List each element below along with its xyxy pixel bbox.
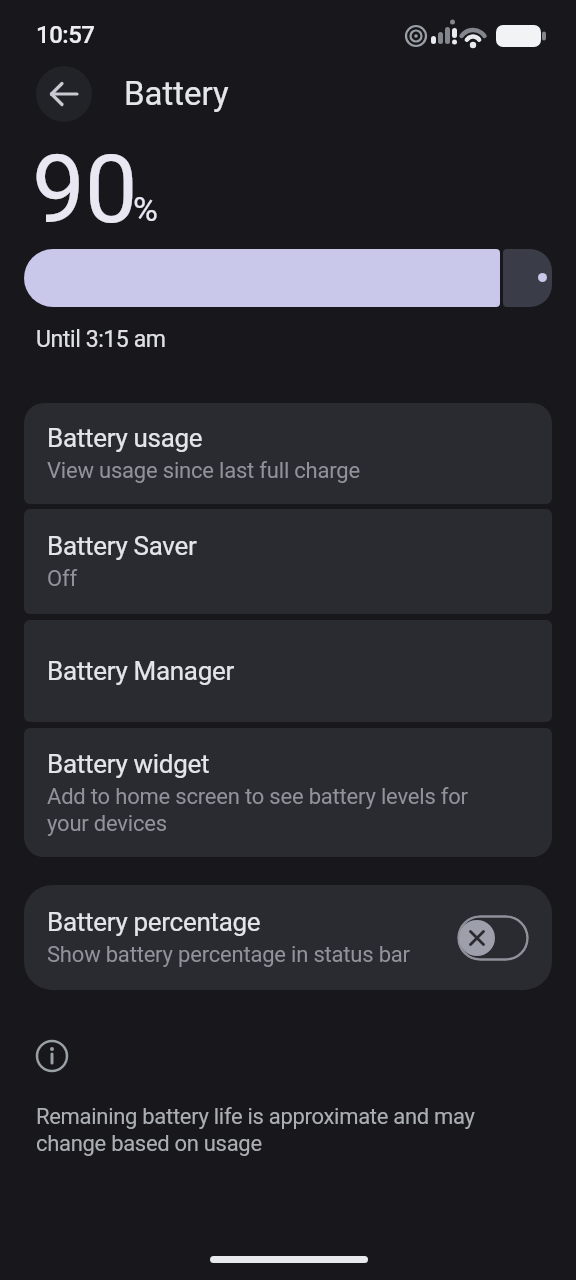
button[interactable]: Battery Manager: [24, 620, 552, 722]
button[interactable]: [457, 915, 529, 961]
staticText: Battery: [124, 74, 229, 113]
staticText: Battery usage: [47, 423, 203, 453]
staticText: Battery widget: [47, 749, 210, 779]
button[interactable]: Battery percentage: [24, 885, 552, 990]
button[interactable]: Battery widget: [24, 728, 552, 857]
staticText: 10:57: [36, 21, 95, 49]
staticText: Remaining battery life is approximate an…: [36, 1104, 475, 1156]
staticText: View usage since last full charge: [47, 458, 360, 484]
button[interactable]: Battery Saver: [24, 509, 552, 614]
button[interactable]: [36, 66, 92, 122]
staticText: Until 3:15 am: [36, 326, 166, 353]
staticText: Add to home screen to see battery levels…: [47, 784, 468, 836]
staticText: Battery Manager: [47, 656, 234, 686]
staticText: Battery Saver: [47, 531, 197, 561]
staticText: Off: [47, 566, 77, 592]
button[interactable]: Battery usage: [24, 403, 552, 504]
staticText: Show battery percentage in status bar: [47, 942, 410, 968]
staticText: %: [133, 189, 158, 229]
staticText: 90: [32, 135, 138, 245]
staticText: Battery percentage: [47, 907, 261, 937]
